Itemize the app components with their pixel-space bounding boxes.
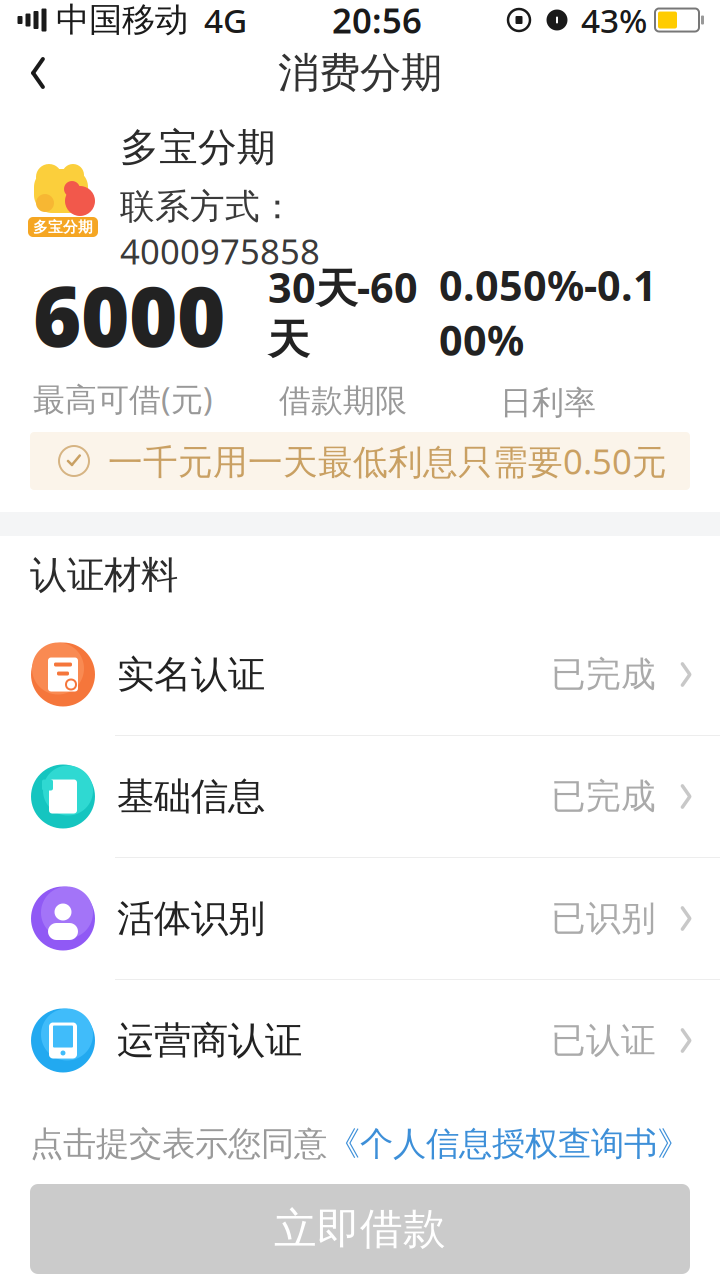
button[interactable]: 活体识别	[0, 858, 720, 980]
button[interactable]: 返回	[0, 43, 76, 103]
staticText: 实名认证	[117, 652, 265, 697]
staticText: 已认证	[551, 1019, 656, 1062]
staticText: 已识别	[551, 897, 656, 940]
staticText: 最高可借(元)	[33, 378, 213, 420]
staticText: 43%	[581, 0, 647, 42]
button[interactable]: 基础信息	[0, 736, 720, 858]
button[interactable]: 立即借款	[30, 1184, 690, 1274]
staticText: 日利率	[500, 383, 596, 422]
staticText: 4G	[204, 0, 247, 42]
button[interactable]: 实名认证	[0, 614, 720, 736]
staticText: 多宝分期	[33, 218, 93, 236]
staticText: 已完成	[551, 775, 656, 818]
staticText: 基础信息	[117, 774, 265, 819]
button[interactable]: 《个人信息授权查询书》	[327, 1123, 690, 1164]
staticText: 中国移动	[56, 0, 188, 40]
staticText: 点击提交表示您同意	[30, 1123, 327, 1164]
staticText: 联系方式：4000975858	[120, 185, 320, 274]
staticText: 运营商认证	[117, 1018, 302, 1063]
button[interactable]: 运营商认证	[0, 980, 720, 1102]
staticText: 20:56	[332, 0, 422, 43]
staticText: 一千元用一天最低利息只需要0.50元	[108, 438, 667, 484]
staticText: 立即借款	[274, 1203, 446, 1255]
staticText: 活体识别	[117, 896, 265, 941]
staticText: 6000	[33, 260, 225, 370]
staticText: 借款期限	[279, 381, 407, 420]
staticText: 消费分期	[278, 48, 442, 98]
staticText: 多宝分期	[120, 124, 276, 171]
staticText: 认证材料	[30, 552, 178, 598]
staticText: 30天-60天	[268, 259, 418, 365]
staticText: 已完成	[551, 653, 656, 696]
staticText: 《个人信息授权查询书》	[327, 1123, 690, 1164]
staticText: 0.050%-0.100%	[439, 257, 657, 367]
